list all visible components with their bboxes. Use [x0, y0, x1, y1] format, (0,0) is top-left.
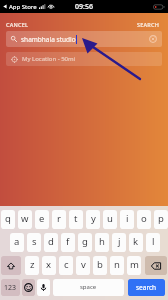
button[interactable]: g — [78, 233, 92, 252]
button[interactable]: e — [35, 210, 49, 229]
button[interactable]: v — [76, 256, 90, 275]
button[interactable]: SEARCH — [131, 18, 168, 31]
button[interactable]: My Location - 50mi — [6, 52, 162, 66]
staticText: c — [64, 258, 69, 271]
button[interactable]: c — [59, 256, 73, 275]
button[interactable]: p — [154, 210, 168, 229]
button[interactable]: b — [93, 256, 107, 275]
button[interactable]: s — [27, 233, 41, 252]
staticText: y — [91, 212, 96, 225]
staticText: shambhala studio — [21, 35, 76, 44]
button[interactable]: Backspace — [145, 256, 167, 275]
button[interactable]: Shift — [1, 256, 21, 275]
button[interactable]: 123 — [1, 279, 20, 296]
staticText: r — [57, 212, 61, 225]
button[interactable]: r — [52, 210, 66, 229]
other: Clear text — [149, 35, 157, 43]
staticText: s — [32, 235, 37, 248]
button[interactable]: a — [10, 233, 24, 252]
staticText: u — [107, 212, 113, 225]
staticText: l — [152, 235, 155, 248]
button[interactable]: y — [86, 210, 100, 229]
staticText: search — [136, 283, 157, 292]
staticText: 123 — [4, 283, 17, 293]
staticText: j — [118, 235, 121, 248]
staticText: i — [126, 212, 129, 225]
button[interactable]: i — [120, 210, 134, 229]
staticText: App Store — [9, 3, 37, 11]
staticText: 09:56 — [75, 2, 93, 12]
button[interactable]: n — [110, 256, 124, 275]
button[interactable]: f — [61, 233, 75, 252]
button[interactable]: q — [1, 210, 15, 229]
button[interactable]: u — [103, 210, 117, 229]
staticText: CANCEL — [6, 21, 29, 28]
staticText: x — [46, 258, 52, 271]
button[interactable]: l — [146, 233, 160, 252]
staticText: n — [114, 258, 120, 271]
staticText: k — [133, 235, 139, 248]
staticText: o — [141, 212, 147, 225]
staticText: My Location - 50mi — [22, 55, 76, 63]
staticText: m — [130, 258, 139, 271]
button[interactable]: z — [25, 256, 39, 275]
button[interactable]: m — [127, 256, 141, 275]
staticText: SEARCH — [137, 21, 159, 28]
staticText: g — [82, 235, 88, 248]
staticText: p — [158, 212, 164, 225]
button[interactable]: Emoji — [22, 279, 35, 296]
staticText: e — [39, 212, 45, 225]
staticText: b — [97, 258, 103, 271]
staticText: a — [14, 235, 20, 248]
staticText: d — [48, 235, 54, 248]
button[interactable]: x — [42, 256, 56, 275]
staticText: v — [81, 258, 86, 271]
button[interactable]: o — [137, 210, 151, 229]
button[interactable]: w — [18, 210, 32, 229]
button[interactable]: Dictation — [37, 279, 50, 296]
button[interactable]: d — [44, 233, 58, 252]
button[interactable]: k — [129, 233, 143, 252]
staticText: t — [74, 212, 78, 225]
button[interactable]: shambhala studio — [6, 31, 162, 47]
staticText: space — [80, 283, 97, 291]
staticText: z — [30, 258, 35, 271]
staticText: q — [5, 212, 11, 225]
button[interactable]: search — [128, 279, 165, 296]
staticText: h — [99, 235, 105, 248]
button[interactable]: h — [95, 233, 109, 252]
staticText: f — [66, 235, 70, 248]
staticText: w — [21, 212, 29, 225]
button[interactable]: CANCEL — [0, 18, 35, 31]
button[interactable]: j — [112, 233, 126, 252]
button[interactable]: t — [69, 210, 83, 229]
button[interactable]: space — [53, 279, 124, 296]
